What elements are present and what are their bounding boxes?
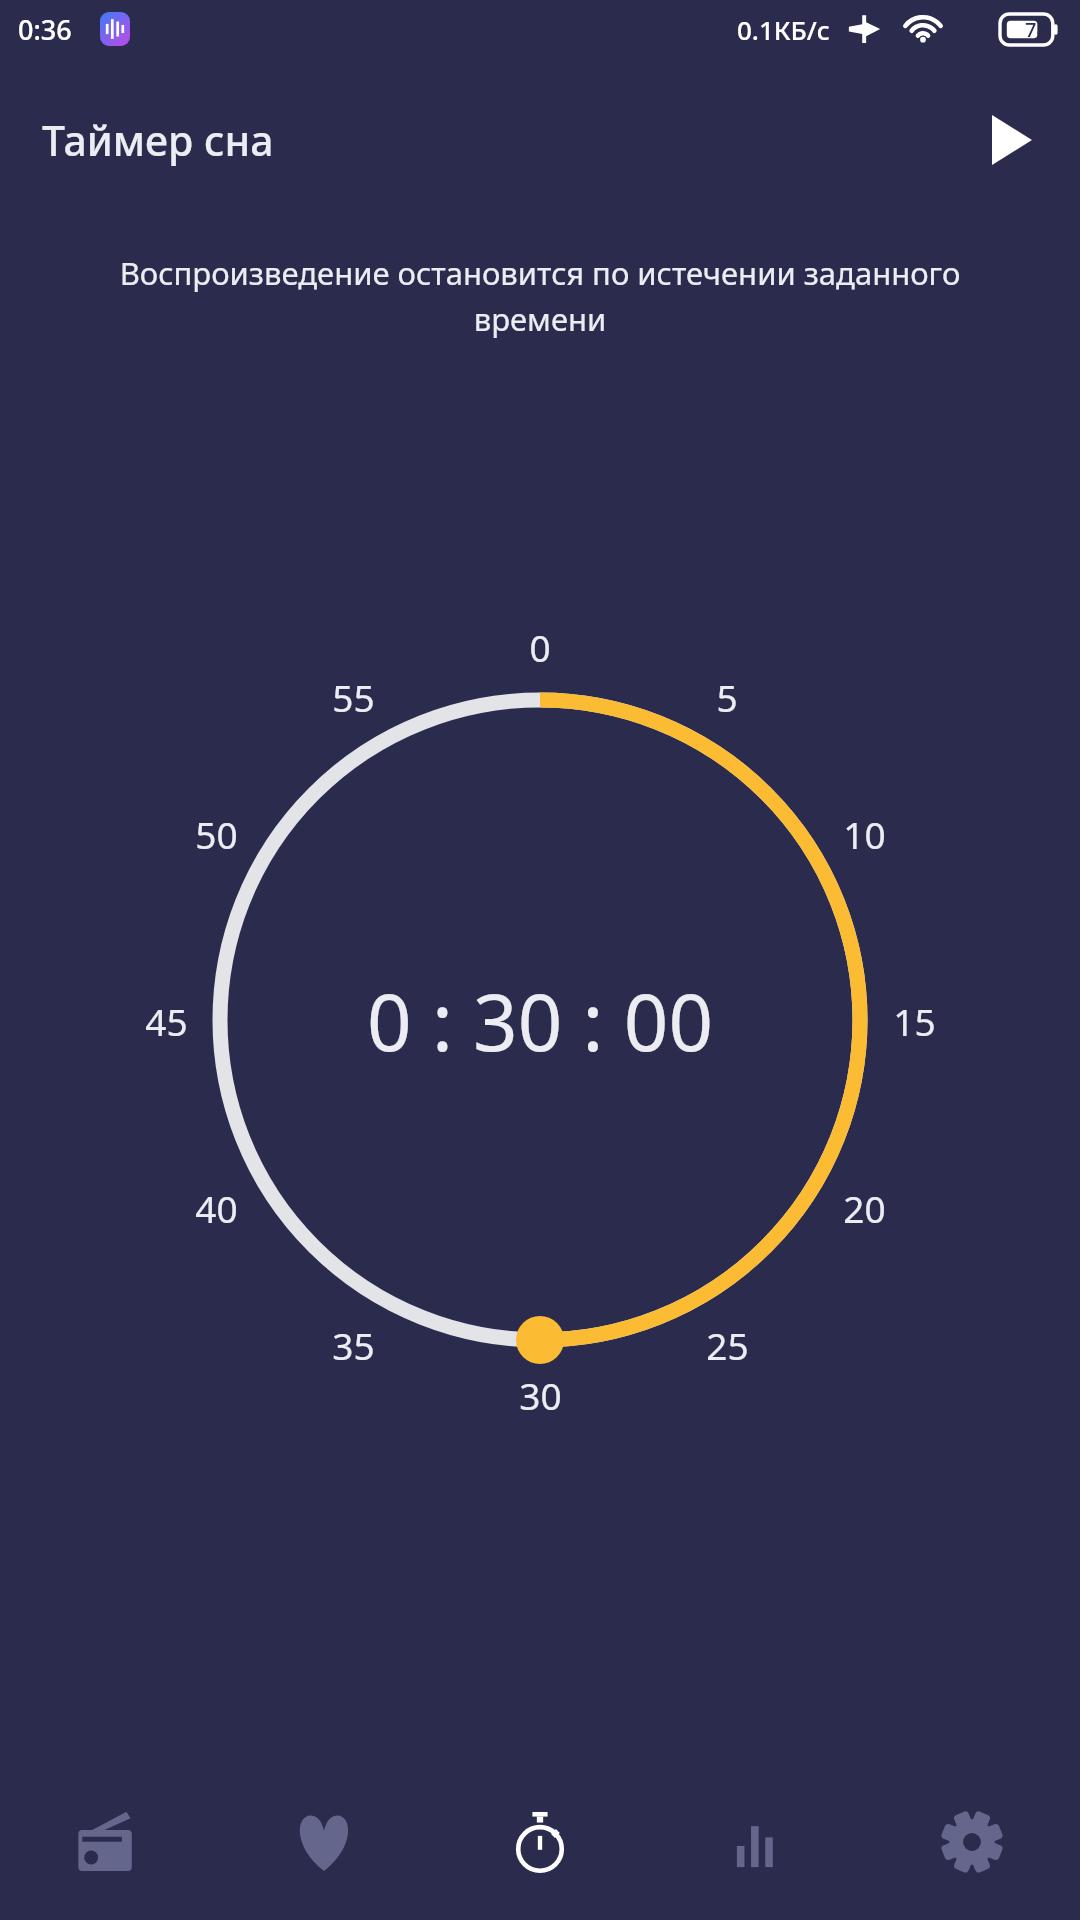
button[interactable]: Settings — [864, 1780, 1080, 1920]
staticText: 0:36 — [18, 11, 72, 48]
staticText: 40 — [195, 1183, 238, 1231]
staticText: 0.1КБ/с — [737, 12, 830, 47]
button[interactable]: Play — [968, 96, 1056, 184]
staticText: 5 — [716, 672, 738, 720]
staticText: Таймер сна — [42, 112, 274, 168]
staticText: 0 — [529, 622, 551, 670]
button[interactable]: Favorites — [216, 1780, 432, 1920]
staticText: 10 — [843, 809, 886, 857]
staticText: 45 — [145, 996, 188, 1044]
staticText: 0 : 30 : 00 — [367, 968, 714, 1072]
staticText: 35 — [332, 1320, 375, 1368]
staticText: Воспроизведение остановится по истечении… — [78, 252, 1002, 340]
staticText: 15 — [893, 996, 936, 1044]
button[interactable]: Sleep timer — [432, 1780, 648, 1920]
staticText: 25 — [706, 1320, 749, 1368]
staticText: 78 — [1025, 16, 1048, 43]
staticText: 55 — [332, 672, 375, 720]
button[interactable]: Radio — [0, 1780, 216, 1920]
staticText: 30 — [519, 1370, 562, 1418]
button[interactable]: Sleep timer dial, 30 minutes — [0, 0, 1080, 1920]
staticText: 50 — [195, 809, 238, 857]
button[interactable]: Equalizer — [648, 1780, 864, 1920]
staticText: 20 — [843, 1183, 886, 1231]
